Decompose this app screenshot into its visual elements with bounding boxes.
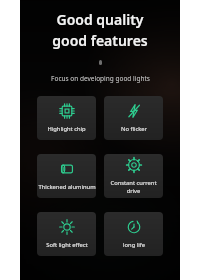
- staticText: Highlight chip: [47, 125, 86, 133]
- other: Constant current drive: [126, 157, 142, 173]
- button[interactable]: Thickened aluminum: [37, 154, 96, 198]
- staticText: Focus on developing good lights: [51, 74, 150, 83]
- staticText: Thickened aluminum: [38, 183, 96, 191]
- other: Soft light effect: [59, 219, 75, 235]
- staticText: Constant current drive: [104, 179, 163, 195]
- button[interactable]: Constant current drive: [104, 154, 163, 198]
- other: No flicker: [126, 103, 142, 119]
- other: Long life: [126, 219, 142, 235]
- other: Highlight chip: [59, 103, 75, 119]
- staticText: long life: [123, 241, 145, 249]
- staticText: No flicker: [121, 125, 147, 133]
- button[interactable]: Long life: [104, 212, 163, 256]
- other: Thickened aluminum: [59, 161, 75, 177]
- staticText: good features: [52, 31, 148, 50]
- staticText: Good quality: [56, 10, 144, 29]
- staticText: Soft light effect: [46, 241, 88, 249]
- button[interactable]: Soft light effect: [37, 212, 96, 256]
- button[interactable]: Highlight chip: [37, 96, 96, 140]
- button[interactable]: No flicker: [104, 96, 163, 140]
